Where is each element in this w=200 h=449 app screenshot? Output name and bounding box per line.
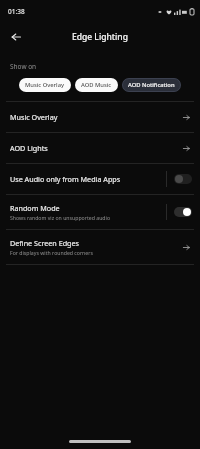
staticText: Show on bbox=[10, 62, 37, 71]
button[interactable]: AOD Notification bbox=[122, 78, 181, 92]
staticText: Shows random viz on unsupported audio bbox=[10, 214, 111, 221]
staticText: AOD Lights bbox=[10, 143, 48, 153]
button[interactable]: Toggle on bbox=[174, 207, 192, 217]
staticText: Music Overlay bbox=[25, 81, 65, 89]
button[interactable]: Use Audio only from Media Apps bbox=[0, 164, 200, 194]
button[interactable]: AOD Music bbox=[75, 78, 118, 92]
button[interactable]: Music Overlay bbox=[19, 78, 71, 92]
button[interactable]: Back bbox=[6, 27, 26, 47]
button[interactable]: Music Overlay bbox=[0, 102, 200, 132]
button[interactable]: Define Screen Edges bbox=[0, 230, 200, 264]
staticText: Random Mode bbox=[10, 203, 60, 213]
staticText: Music Overlay bbox=[10, 112, 58, 122]
staticText: 01:38 bbox=[8, 7, 25, 16]
staticText: Use Audio only from Media Apps bbox=[10, 174, 121, 184]
staticText: AOD Notification bbox=[128, 81, 175, 89]
staticText: AOD Music bbox=[81, 81, 112, 89]
button[interactable]: AOD Lights bbox=[0, 133, 200, 163]
staticText: For displays with rounded corners bbox=[10, 249, 93, 256]
button[interactable]: Random Mode bbox=[0, 195, 200, 229]
button[interactable]: Toggle off bbox=[174, 174, 192, 184]
staticText: Edge Lighting bbox=[72, 31, 128, 43]
staticText: Define Screen Edges bbox=[10, 238, 79, 248]
